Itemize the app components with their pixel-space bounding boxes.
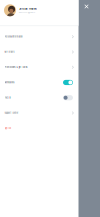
button[interactable]: Face ID: [0, 90, 78, 105]
button[interactable]: Promocodes & gift cards: [0, 60, 78, 75]
button[interactable]: Notifications: [0, 75, 78, 90]
button[interactable]: Close: [81, 1, 92, 12]
button[interactable]: Support center: [0, 105, 78, 120]
button[interactable]: Personal information: [0, 29, 78, 44]
staticText: Face ID: [4, 97, 10, 99]
button[interactable]: My orders: [0, 44, 78, 60]
staticText: Jordan Hebert: [19, 7, 37, 10]
staticText: Personal information: [4, 36, 22, 38]
staticText: Sign out: [4, 127, 11, 129]
staticText: Promocodes & gift cards: [4, 66, 27, 68]
button[interactable]: Jordan Hebert: [0, 0, 78, 25]
staticText: jordanhebert@gmail.com: [19, 12, 35, 13]
staticText: Notifications: [4, 81, 14, 84]
staticText: My orders: [4, 51, 14, 53]
button[interactable]: Sign out: [0, 121, 78, 136]
staticText: Support center: [4, 112, 18, 114]
